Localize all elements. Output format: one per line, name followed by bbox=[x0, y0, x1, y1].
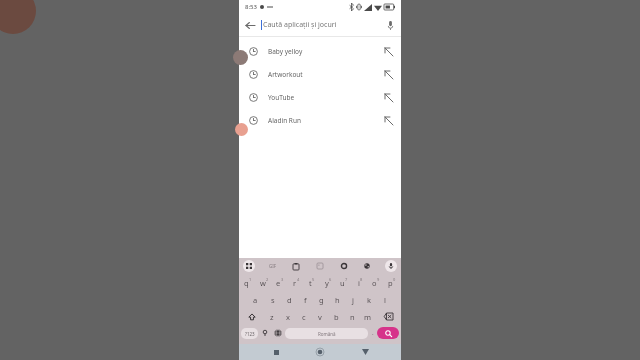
button[interactable]: a bbox=[247, 291, 264, 308]
button[interactable]: Back bbox=[357, 344, 373, 360]
button[interactable]: Search bbox=[377, 327, 399, 339]
button[interactable]: u bbox=[336, 274, 352, 291]
button[interactable]: Period bbox=[368, 325, 377, 341]
staticText: z bbox=[270, 312, 274, 322]
staticText: 5 bbox=[312, 277, 315, 282]
staticText: c bbox=[302, 312, 306, 322]
button[interactable]: Română bbox=[285, 328, 368, 339]
staticText: 9 bbox=[377, 277, 380, 282]
button[interactable]: Backspace bbox=[376, 308, 400, 325]
staticText: 3 bbox=[281, 277, 284, 282]
button[interactable]: q bbox=[240, 274, 256, 291]
button[interactable]: Language bbox=[271, 325, 285, 341]
staticText: u bbox=[340, 278, 345, 288]
button[interactable]: Emoji bbox=[258, 325, 271, 341]
button[interactable]: d bbox=[281, 291, 297, 308]
button[interactable]: Aladin Run bbox=[239, 109, 401, 132]
staticText: h bbox=[335, 295, 340, 305]
button[interactable]: k bbox=[361, 291, 377, 308]
button[interactable]: r bbox=[288, 274, 304, 291]
button[interactable]: w bbox=[256, 274, 272, 291]
staticText: Caută aplicații și jocuri bbox=[263, 20, 337, 30]
staticText: n bbox=[350, 312, 355, 322]
staticText: ?123 bbox=[245, 331, 255, 337]
button[interactable]: Artworkout bbox=[239, 63, 401, 86]
staticText: v bbox=[318, 312, 322, 322]
staticText: 8:53 bbox=[245, 3, 257, 11]
staticText: . bbox=[372, 329, 374, 337]
staticText: q bbox=[244, 278, 249, 288]
staticText: y bbox=[325, 278, 329, 288]
staticText: t bbox=[309, 278, 312, 288]
staticText: j bbox=[352, 295, 354, 305]
button[interactable]: c bbox=[296, 308, 312, 325]
button[interactable]: y bbox=[320, 274, 336, 291]
staticText: 1 bbox=[249, 277, 252, 282]
button[interactable]: Recents bbox=[268, 344, 284, 360]
staticText: l bbox=[384, 295, 386, 305]
button[interactable]: g bbox=[313, 291, 329, 308]
button[interactable]: f bbox=[297, 291, 313, 308]
staticText: a bbox=[253, 295, 258, 305]
button[interactable]: e bbox=[272, 274, 288, 291]
staticText: Baby yelloy bbox=[268, 47, 303, 56]
button[interactable]: Baby yelloy bbox=[239, 40, 401, 63]
staticText: o bbox=[372, 278, 377, 288]
button[interactable]: b bbox=[328, 308, 344, 325]
staticText: x bbox=[286, 312, 290, 322]
button[interactable]: Clipboard bbox=[290, 260, 302, 272]
button[interactable]: Voice input bbox=[385, 260, 397, 272]
staticText: GIF bbox=[269, 263, 277, 269]
button[interactable]: v bbox=[312, 308, 328, 325]
staticText: 8 bbox=[360, 277, 363, 282]
staticText: 0 bbox=[393, 277, 396, 282]
button[interactable]: t bbox=[304, 274, 320, 291]
button[interactable]: h bbox=[329, 291, 345, 308]
staticText: k bbox=[367, 295, 372, 305]
staticText: g bbox=[319, 295, 324, 305]
button[interactable]: Home bbox=[312, 344, 328, 360]
button[interactable]: Settings bbox=[338, 260, 350, 272]
button[interactable]: Voice search bbox=[379, 14, 401, 36]
staticText: i bbox=[358, 278, 360, 288]
button[interactable]: Shift bbox=[240, 308, 264, 325]
button[interactable]: ?123 bbox=[241, 328, 258, 339]
button[interactable]: Menu bbox=[243, 260, 255, 272]
button[interactable]: i bbox=[352, 274, 368, 291]
button[interactable]: o bbox=[368, 274, 384, 291]
staticText: w bbox=[260, 278, 266, 288]
button[interactable]: x bbox=[280, 308, 296, 325]
button[interactable]: j bbox=[345, 291, 361, 308]
staticText: 2 bbox=[266, 277, 269, 282]
button[interactable]: Sticker bbox=[314, 260, 326, 272]
staticText: f bbox=[304, 295, 307, 305]
staticText: 6 bbox=[329, 277, 332, 282]
button[interactable]: GIF bbox=[267, 260, 279, 272]
button[interactable]: s bbox=[264, 291, 281, 308]
staticText: Artworkout bbox=[268, 70, 303, 79]
button[interactable]: Back bbox=[239, 14, 261, 36]
staticText: d bbox=[287, 295, 292, 305]
button[interactable]: Theme bbox=[361, 260, 373, 272]
staticText: YouTube bbox=[268, 93, 295, 102]
staticText: p bbox=[388, 278, 393, 288]
staticText: 7 bbox=[345, 277, 348, 282]
button[interactable]: m bbox=[360, 308, 376, 325]
staticText: s bbox=[271, 295, 275, 305]
staticText: e bbox=[276, 278, 281, 288]
staticText: b bbox=[334, 312, 339, 322]
staticText: 4 bbox=[297, 277, 300, 282]
button[interactable]: p bbox=[384, 274, 400, 291]
button[interactable]: n bbox=[344, 308, 360, 325]
button[interactable]: YouTube bbox=[239, 86, 401, 109]
button[interactable]: l bbox=[377, 291, 393, 308]
staticText: Română bbox=[318, 331, 336, 337]
staticText: r bbox=[293, 278, 297, 288]
staticText: m bbox=[364, 312, 372, 322]
button[interactable]: z bbox=[264, 308, 280, 325]
staticText: Aladin Run bbox=[268, 116, 301, 125]
